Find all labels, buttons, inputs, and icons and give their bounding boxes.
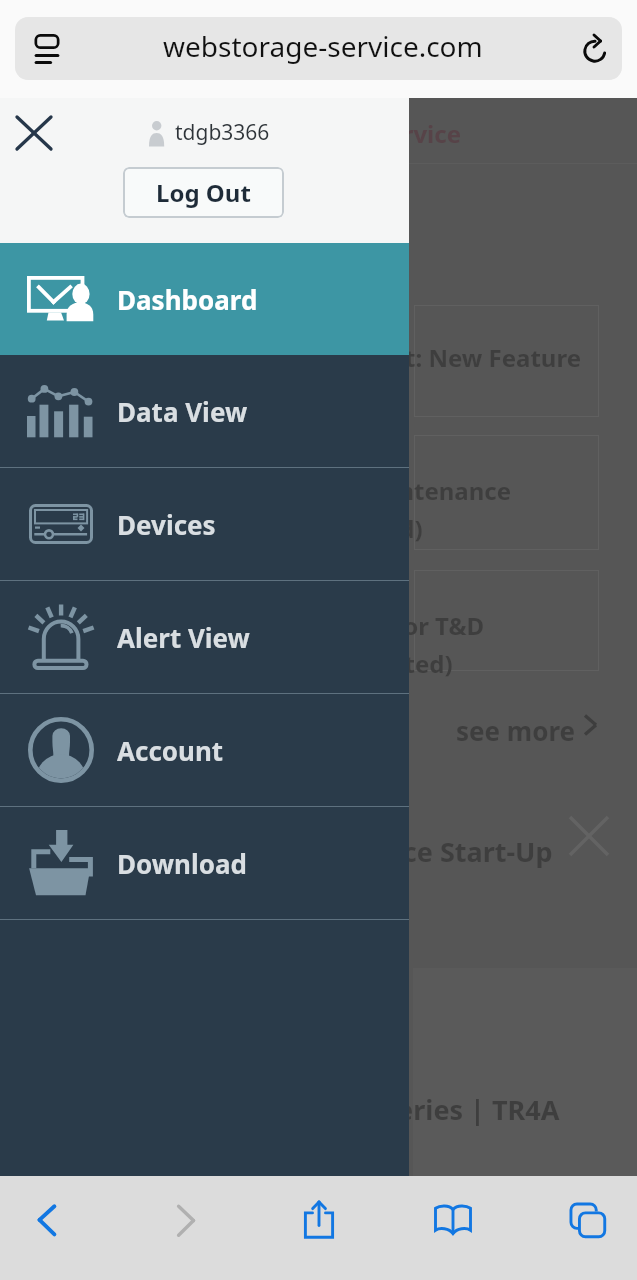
staticText: Device Start-Up xyxy=(344,833,553,870)
staticText: webstorage-service.com xyxy=(163,27,483,65)
staticText: TR-7wb series | TR4A xyxy=(279,1091,560,1128)
button[interactable]: Devices xyxy=(0,468,409,580)
staticText: see more xyxy=(456,713,576,748)
staticText: Account xyxy=(117,733,224,768)
button[interactable]: Page settings xyxy=(22,17,72,80)
button[interactable]: Forward xyxy=(128,1176,244,1280)
staticText: (Completed) xyxy=(306,647,453,680)
staticText: Update for T&D xyxy=(300,609,485,642)
staticText: Dashboard xyxy=(117,282,258,317)
staticText: Download xyxy=(117,846,247,881)
button[interactable]: Dashboard xyxy=(0,243,409,355)
staticText: Important: New Feature xyxy=(291,341,582,374)
button[interactable]: Bookmarks xyxy=(396,1176,510,1280)
staticText: (Completed) xyxy=(276,512,423,545)
staticText: Data View xyxy=(117,394,248,429)
button[interactable]: Download xyxy=(0,807,409,919)
staticText: Log Out xyxy=(156,176,251,209)
button[interactable]: Alert View xyxy=(0,581,409,693)
staticText: tdgb3366 xyxy=(175,118,270,147)
staticText: Devices xyxy=(117,507,216,542)
staticText: Scheduled Maintenance xyxy=(225,474,512,507)
staticText: webstorage-service xyxy=(227,117,461,150)
button[interactable]: Log Out xyxy=(123,167,284,218)
staticText: Alert View xyxy=(117,620,250,655)
button[interactable]: Back xyxy=(0,1176,94,1280)
button[interactable]: Close xyxy=(5,104,63,162)
button[interactable]: Reload xyxy=(570,17,620,80)
button[interactable]: Account xyxy=(0,694,409,806)
button[interactable]: Data View xyxy=(0,355,409,467)
button[interactable]: Tabs xyxy=(530,1176,637,1280)
button[interactable]: Share xyxy=(262,1176,376,1280)
